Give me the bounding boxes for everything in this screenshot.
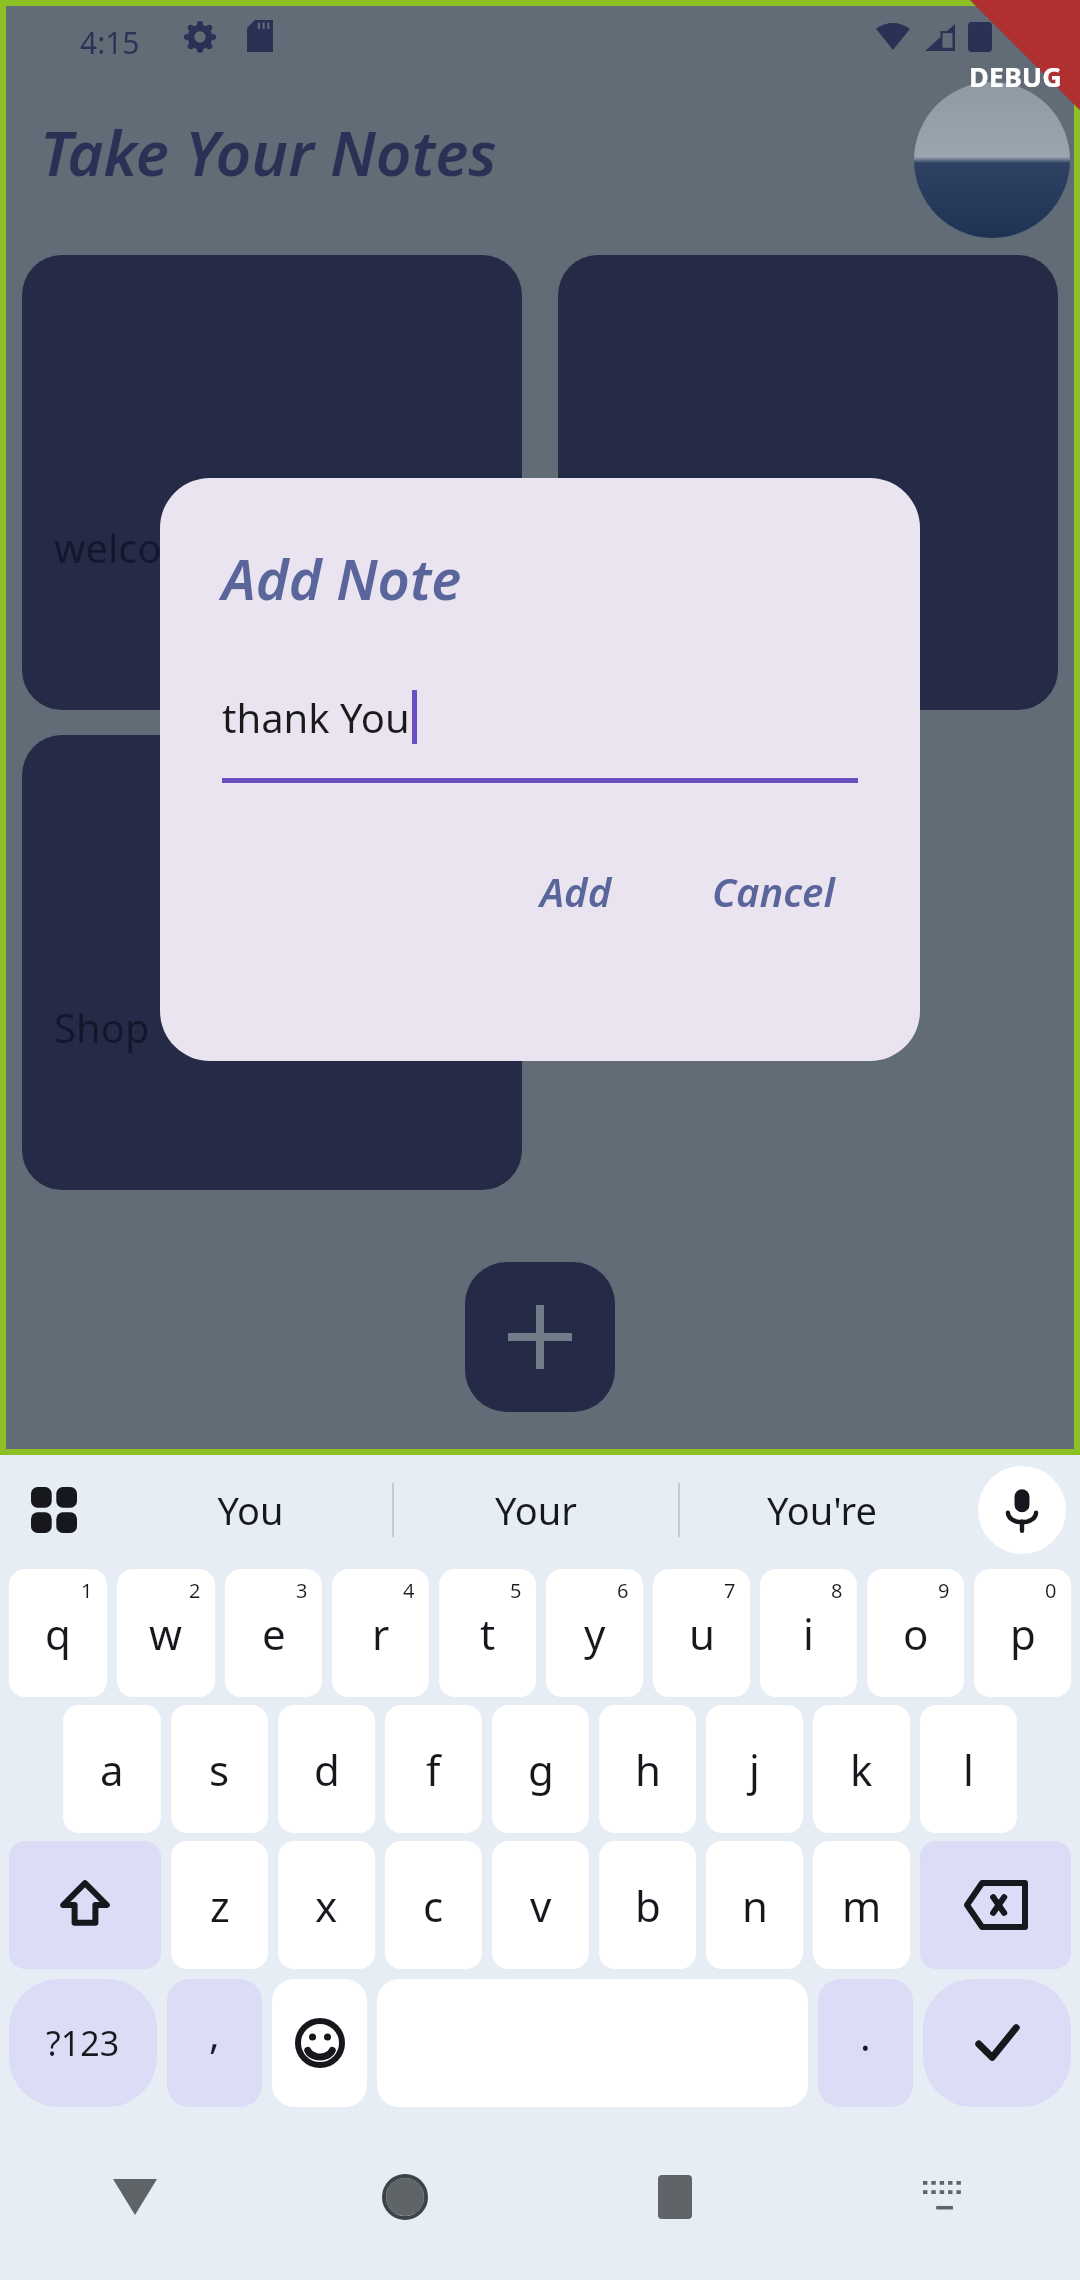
staticText: Take Your Notes [40,110,497,194]
staticText: DEBUG [969,58,1062,95]
button[interactable]: Notes [558,255,1058,710]
button[interactable]: Profile [914,82,1070,238]
staticText: z [210,1877,230,1934]
button[interactable]: c [385,1841,482,1969]
staticText: 8 [831,1577,843,1604]
staticText: l [963,1741,974,1798]
staticText: h [635,1741,661,1798]
staticText: 1 [81,1577,93,1604]
staticText: x [315,1877,338,1934]
button[interactable]: Shop [22,735,522,1190]
button[interactable]: ?123 [9,1979,157,2107]
button[interactable]: m [813,1841,910,1969]
button[interactable]: f [385,1705,482,1833]
staticText: . [860,2008,871,2062]
staticText: s [209,1741,230,1798]
button[interactable]: 8 [760,1569,857,1697]
staticText: v [530,1877,552,1934]
staticText: 7 [724,1577,736,1604]
button[interactable]: 2 [117,1569,215,1697]
staticText: 3 [296,1577,308,1604]
button[interactable]: Shift [9,1841,161,1969]
button[interactable]: s [171,1705,268,1833]
button[interactable]: Hide keyboard [810,2113,1080,2280]
staticText: i [803,1605,814,1662]
button[interactable]: 5 [439,1569,536,1697]
staticText: p [1010,1605,1036,1662]
staticText: Your [495,1484,577,1536]
button[interactable]: Cancel [690,848,857,934]
staticText: You [217,1484,284,1536]
button[interactable]: l [920,1705,1017,1833]
button[interactable]: v [492,1841,589,1969]
button[interactable]: Emoji [272,1979,367,2107]
staticText: w [149,1605,183,1662]
button[interactable]: 4 [332,1569,429,1697]
staticText: e [262,1605,286,1662]
staticText: y [584,1605,606,1662]
button[interactable]: 6 [546,1569,643,1697]
button[interactable]: 7 [653,1569,750,1697]
button[interactable]: Keyboard options [0,1455,108,1565]
button[interactable]: b [599,1841,696,1969]
staticText: 9 [938,1577,950,1604]
button[interactable]: Add note [465,1262,615,1412]
button[interactable]: Home [270,2113,540,2280]
staticText: t [480,1605,496,1662]
staticText: Add Note [222,540,462,616]
staticText: , [209,2006,220,2060]
staticText: welcome [54,520,222,574]
button[interactable]: Your [394,1455,678,1565]
staticText: r [372,1605,390,1662]
button[interactable]: 1 [9,1569,107,1697]
button[interactable]: Back [0,2113,270,2280]
staticText: d [314,1741,340,1798]
button[interactable]: Voice input [964,1455,1080,1565]
staticText: 0 [1045,1577,1057,1604]
button[interactable]: j [706,1705,803,1833]
button[interactable]: , [167,1979,262,2107]
staticText: u [689,1605,715,1662]
staticText: a [100,1741,124,1798]
button[interactable]: Enter [923,1979,1071,2107]
staticText: Add [540,864,612,918]
staticText: 6 [617,1577,629,1604]
button[interactable]: 0 [974,1569,1071,1697]
button[interactable]: h [599,1705,696,1833]
staticText: b [635,1877,661,1934]
button[interactable]: n [706,1841,803,1969]
staticText: 4:15 [80,22,140,63]
staticText: m [842,1877,882,1934]
button[interactable]: x [278,1841,375,1969]
staticText: 4 [403,1577,415,1604]
staticText: c [423,1877,444,1934]
button[interactable]: d [278,1705,375,1833]
button[interactable]: 9 [867,1569,964,1697]
staticText: n [742,1877,768,1934]
button[interactable]: a [63,1705,161,1833]
button[interactable]: You're [680,1455,964,1565]
button[interactable]: z [171,1841,268,1969]
staticText: 2 [189,1577,201,1604]
staticText: j [749,1741,760,1798]
button[interactable]: 3 [225,1569,322,1697]
button[interactable]: g [492,1705,589,1833]
button[interactable]: k [813,1705,910,1833]
staticText: Cancel [712,864,835,918]
button[interactable]: welcome [22,255,522,710]
staticText: Shop [54,1000,150,1054]
staticText: f [426,1741,441,1798]
staticText: g [528,1741,554,1798]
button[interactable]: Add [518,848,634,934]
staticText: thank You [222,690,410,744]
button[interactable]: . [818,1979,913,2107]
button[interactable]: You [108,1455,392,1565]
staticText: You're [767,1484,877,1536]
staticText: o [903,1605,929,1662]
button[interactable]: Backspace [920,1841,1071,1969]
button[interactable]: Recent apps [540,2113,810,2280]
staticText: k [850,1741,873,1798]
staticText: q [45,1605,71,1662]
